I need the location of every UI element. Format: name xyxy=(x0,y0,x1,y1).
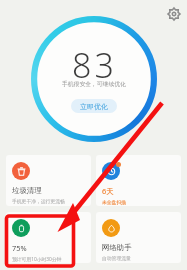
staticText: 75% xyxy=(12,243,27,253)
staticText: 83 xyxy=(72,42,117,80)
button[interactable]: 垃圾清理 xyxy=(6,155,91,206)
staticText: 预计可用10小时30分钟 xyxy=(12,256,62,263)
staticText: 网络助手 xyxy=(102,243,132,252)
button[interactable]: 6天 xyxy=(96,155,181,206)
button[interactable]: 75% xyxy=(6,212,91,263)
button[interactable]: Settings xyxy=(165,5,182,22)
staticText: 自动管理流量 xyxy=(102,255,131,261)
staticText: 立即优化 xyxy=(80,102,108,111)
staticText: 手机很安全，可继续优化 xyxy=(62,80,126,87)
staticText: 垃圾清理 xyxy=(12,186,42,195)
staticText: 6天 xyxy=(102,186,114,196)
staticText: 手机更干净，运行更流畅 xyxy=(12,198,65,204)
button[interactable]: 立即优化 xyxy=(71,99,117,113)
button[interactable]: 网络助手 xyxy=(96,212,181,263)
staticText: 未全盘扫描 xyxy=(102,199,126,205)
